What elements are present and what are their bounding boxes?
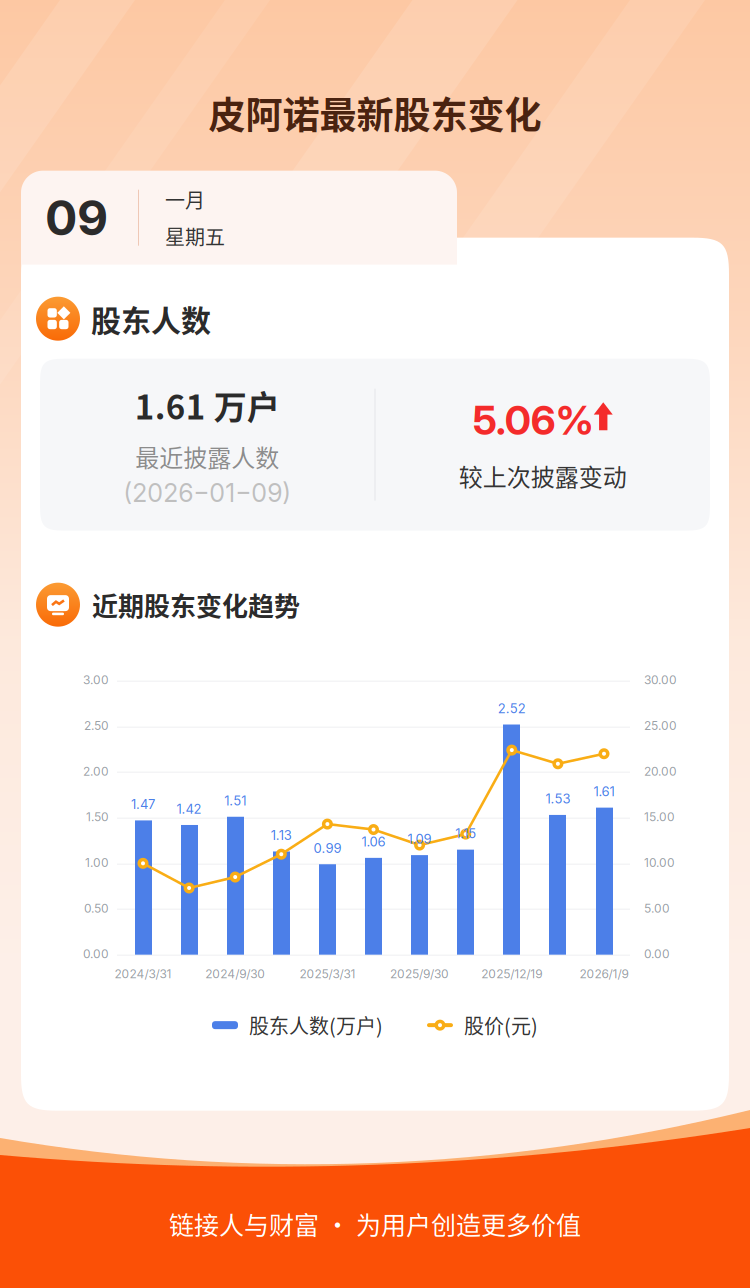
staticText: 2026/1/9 [579,967,628,981]
staticText: 一月 [165,185,205,214]
staticText: 15.00 [644,810,675,824]
staticText: 1.51 [224,793,246,809]
staticText: 3.00 [83,673,109,687]
staticText: 1.09 [408,831,432,847]
staticText: 链接人与财富 · 为用户创造更多价值 [169,1206,581,1242]
staticText: 股价(元) [464,1011,538,1040]
staticText: 1.61 万户 [135,381,280,429]
staticText: 1.47 [131,796,155,812]
staticText: 5.00 [644,901,670,915]
staticText: 1.15 [455,826,476,841]
staticText: 5.06% [473,396,594,444]
staticText: 2025/12/19 [481,967,542,981]
staticText: 1.13 [271,827,292,843]
staticText: 2025/3/31 [299,967,355,981]
staticText: 0.00 [83,947,109,961]
staticText: 20.00 [644,764,677,778]
staticText: 1.61 [593,784,614,799]
staticText: 1.53 [545,791,570,807]
staticText: 2.52 [498,700,526,716]
staticText: 2.50 [84,718,109,733]
staticText: 0.99 [313,840,341,856]
staticText: 近期股东变化趋势 [92,586,300,623]
staticText: 0.00 [644,947,670,961]
staticText: 最近披露人数 [135,439,279,474]
staticText: 1.06 [361,834,385,850]
staticText: 30.00 [644,673,677,687]
staticText: 10.00 [644,855,675,870]
staticText: 25.00 [644,718,677,733]
staticText: 1.42 [177,801,202,817]
staticText: 皮阿诺最新股东变化 [208,86,541,140]
staticText: 2024/9/30 [205,967,265,981]
staticText: 1.00 [85,855,109,870]
staticText: 0.50 [84,901,109,915]
staticText: 2.00 [83,764,109,778]
staticText: 星期五 [165,222,225,251]
staticText: 较上次披露变动 [459,458,627,493]
staticText: (2026−01−09) [123,478,291,508]
staticText: 1.50 [86,810,109,824]
staticText: 2025/9/30 [390,967,449,981]
staticText: 股东人数 [91,297,211,340]
staticText: 股东人数(万户) [249,1011,383,1040]
staticText: 09 [45,189,108,247]
staticText: 2024/3/31 [114,967,171,981]
